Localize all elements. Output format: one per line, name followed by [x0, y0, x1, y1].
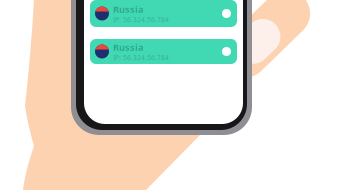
staticText: Russia: [113, 3, 143, 15]
staticText: IP: 56.324.56.784: [113, 53, 169, 62]
staticText: Russia: [113, 41, 143, 53]
staticText: IP: 56.324.56.784: [113, 15, 169, 24]
button[interactable]: Russia: [90, 39, 237, 64]
button[interactable]: Russia: [90, 0, 237, 27]
